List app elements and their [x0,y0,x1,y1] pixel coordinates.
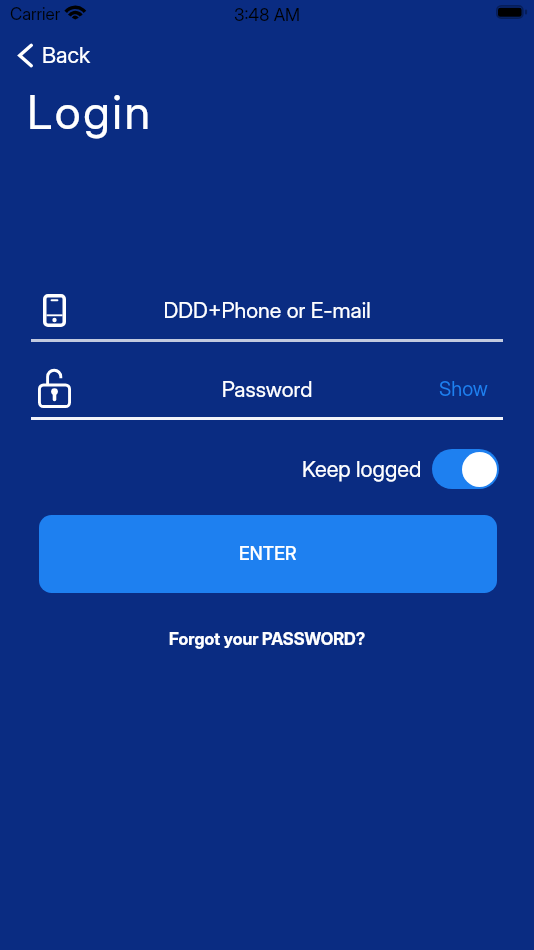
staticText: DDD+Phone or E-mail [31,297,503,323]
staticText: Keep logged [302,456,422,482]
staticText: Password [31,376,503,402]
button[interactable]: Back [14,38,95,73]
staticText: ENTER [239,543,297,565]
button[interactable]: ENTER [39,515,497,593]
button[interactable]: Keep logged on [296,445,502,493]
button[interactable]: Show [431,369,496,409]
button[interactable]: DDD+Phone or E-mail [31,288,503,342]
staticText: Login [27,83,153,140]
staticText: 3:48 AM [234,4,301,25]
staticText: Show [439,377,488,401]
staticText: Carrier [10,4,61,25]
button[interactable]: Forgot your PASSWORD? [159,625,376,653]
button[interactable]: Password [31,366,503,420]
staticText: Back [42,42,91,69]
